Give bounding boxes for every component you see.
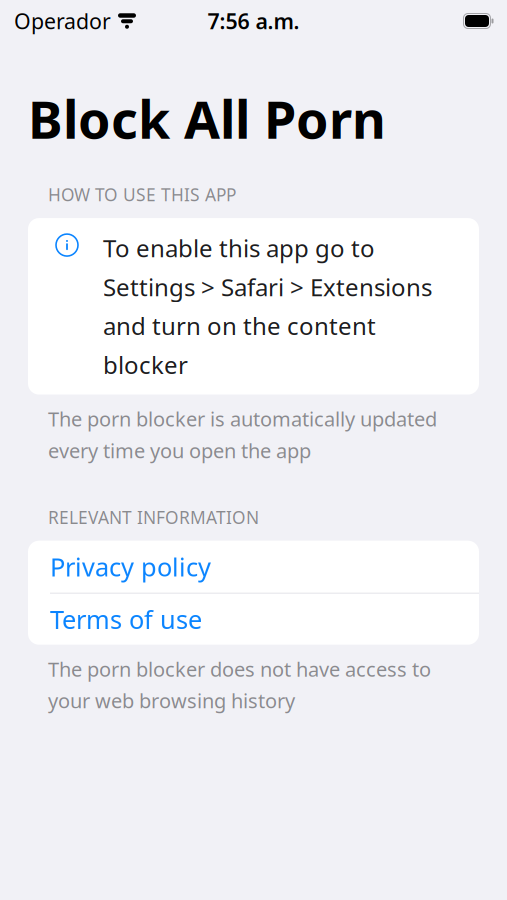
button[interactable]: Privacy policy xyxy=(28,541,479,593)
button[interactable]: Terms of use xyxy=(28,594,479,645)
staticText: The porn blocker is automatically update… xyxy=(48,406,437,464)
staticText: HOW TO USE THIS APP xyxy=(48,183,236,206)
staticText: Block All Porn xyxy=(28,84,386,153)
staticText: Privacy policy xyxy=(50,550,211,583)
staticText: Terms of use xyxy=(50,602,202,636)
staticText: Operador xyxy=(14,7,111,35)
staticText: The porn blocker does not have access to… xyxy=(48,656,431,714)
staticText: 7:56 a.m. xyxy=(207,7,299,35)
staticText: To enable this app go to Settings > Safa… xyxy=(103,232,432,381)
staticText: RELEVANT INFORMATION xyxy=(48,506,259,529)
